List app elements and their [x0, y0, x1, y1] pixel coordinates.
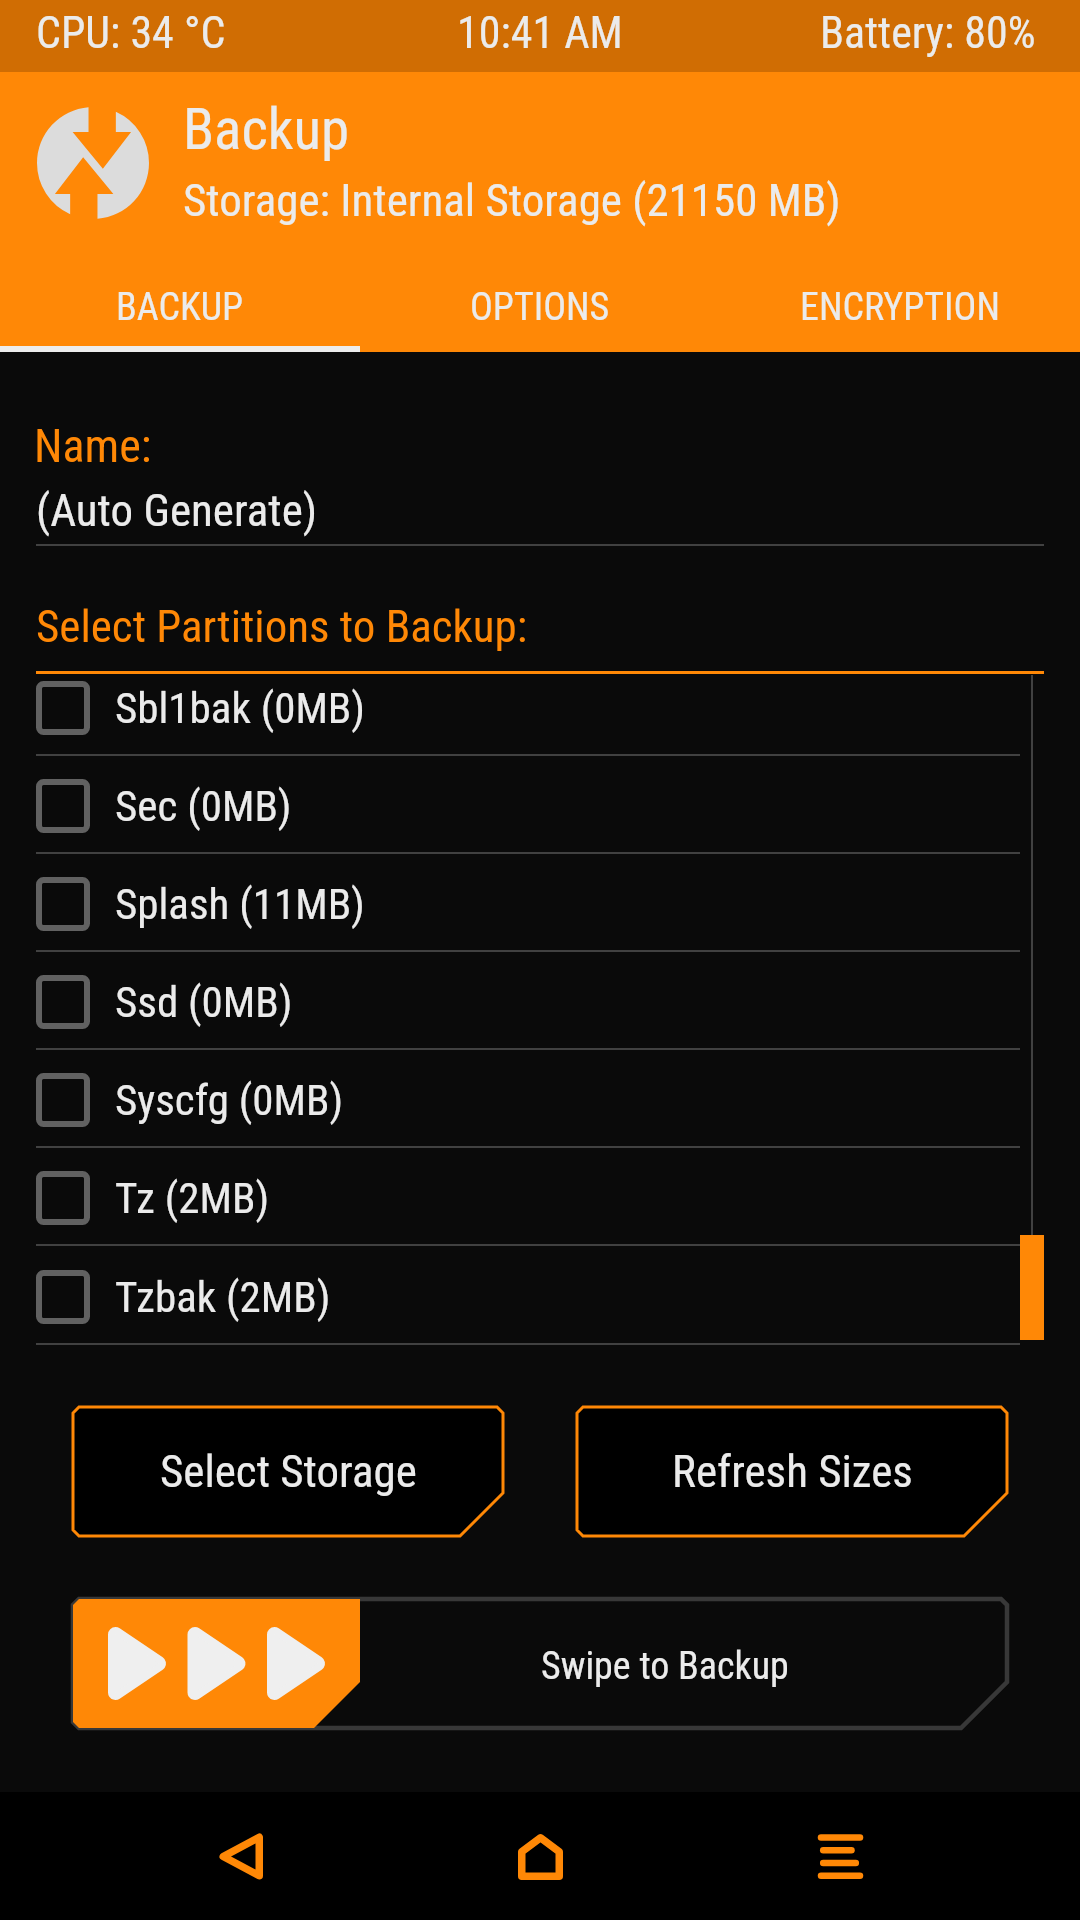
button[interactable]: Splash (11MB) — [0, 854, 1080, 952]
button[interactable]: Back — [180, 1792, 300, 1920]
staticText: Tzbak (2MB) — [115, 1272, 331, 1322]
staticText: Name: — [34, 419, 152, 473]
staticText: Syscfg (0MB) — [115, 1075, 344, 1125]
button[interactable]: OPTIONS — [360, 257, 720, 357]
staticText: Tz (2MB) — [115, 1173, 270, 1223]
staticText: Battery: 80% — [820, 7, 1036, 59]
staticText: Sec (0MB) — [115, 781, 292, 831]
button[interactable]: BACKUP — [0, 257, 360, 357]
button[interactable]: Ssd (0MB) — [0, 952, 1080, 1050]
button[interactable]: Tzbak (2MB) — [0, 1247, 1080, 1345]
staticText: Ssd (0MB) — [115, 977, 293, 1027]
button[interactable]: Tz (2MB) — [0, 1148, 1080, 1246]
button[interactable]: Sbl1bak (0MB) — [0, 675, 1080, 756]
staticText: CPU: 34 °C — [36, 7, 226, 59]
button[interactable]: Refresh Sizes — [577, 1407, 1007, 1536]
staticText: Refresh Sizes — [672, 1445, 913, 1498]
staticText: BACKUP — [116, 285, 244, 330]
button[interactable]: Select Storage — [73, 1407, 503, 1536]
button[interactable]: Sec (0MB) — [0, 756, 1080, 854]
staticText: ENCRYPTION — [800, 285, 1000, 330]
button[interactable]: Swipe to Backup — [73, 1599, 1007, 1728]
staticText: OPTIONS — [470, 285, 610, 330]
button[interactable]: Home — [480, 1792, 600, 1920]
staticText: Backup — [183, 96, 350, 163]
staticText: 10:41 AM — [457, 7, 623, 59]
staticText: Splash (11MB) — [115, 879, 365, 929]
button[interactable]: Menu — [780, 1792, 900, 1920]
staticText: Select Storage — [160, 1445, 417, 1498]
button[interactable]: ENCRYPTION — [720, 257, 1080, 357]
staticText: Select Partitions to Backup: — [36, 600, 528, 653]
staticText: (Auto Generate) — [36, 484, 318, 537]
staticText: Sbl1bak (0MB) — [115, 683, 366, 733]
button[interactable]: Syscfg (0MB) — [0, 1050, 1080, 1148]
staticText: Swipe to Backup — [541, 1644, 789, 1689]
staticText: Storage: Internal Storage (21150 MB) — [183, 174, 841, 227]
